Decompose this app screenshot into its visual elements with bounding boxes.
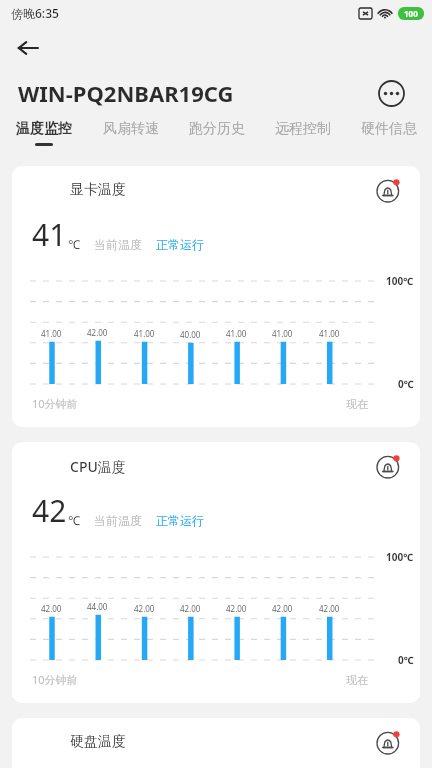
staticText: 100 [404, 8, 418, 19]
staticText: 41.00 [319, 328, 340, 339]
staticText: 当前温度 [94, 237, 142, 252]
staticText: 温度监控 [16, 120, 72, 138]
staticText: 42.00 [87, 327, 108, 338]
staticText: 42.00 [226, 603, 247, 614]
button[interactable]: Alarm settings [373, 174, 405, 206]
staticText: WIN-PQ2NBAR19CG [18, 78, 234, 108]
staticText: 10分钟前 [32, 396, 78, 411]
staticText: 风扇转速 [103, 120, 159, 138]
button[interactable]: Alarm settings [373, 450, 405, 482]
staticText: 41.00 [226, 328, 247, 339]
staticText: 显卡温度 [70, 181, 126, 199]
staticText: CPU温度 [70, 457, 126, 476]
staticText: 10分钟前 [32, 672, 78, 687]
button[interactable]: CPU温度 [12, 442, 420, 703]
staticText: 41.00 [134, 328, 155, 339]
staticText: 跑分历史 [189, 120, 245, 138]
staticText: 41.00 [41, 328, 62, 339]
button[interactable]: 远程控制 [260, 116, 346, 158]
button[interactable]: 温度监控 [0, 116, 87, 158]
staticText: 44.00 [87, 601, 108, 612]
button[interactable]: 跑分历史 [174, 116, 260, 158]
staticText: 正常运行 [156, 237, 204, 252]
staticText: 42.00 [41, 603, 62, 614]
staticText: 100℃ [386, 550, 414, 564]
staticText: 现在 [346, 397, 368, 411]
staticText: 现在 [346, 673, 368, 687]
button[interactable]: Back [8, 28, 48, 68]
staticText: 42.00 [272, 603, 293, 614]
staticText: 42.00 [134, 603, 155, 614]
staticText: 42 [32, 490, 67, 531]
staticText: ℃ [68, 236, 80, 252]
staticText: 远程控制 [275, 120, 331, 138]
staticText: 42.00 [180, 603, 201, 614]
staticText: 100℃ [386, 274, 414, 288]
staticText: 硬件信息 [361, 120, 417, 138]
button[interactable]: 显卡温度 [12, 166, 420, 427]
staticText: ℃ [68, 512, 80, 528]
staticText: 41.00 [272, 328, 293, 339]
staticText: 傍晚6:35 [11, 5, 59, 21]
staticText: 正常运行 [156, 513, 204, 528]
staticText: 0℃ [398, 653, 414, 667]
staticText: 42.00 [319, 603, 340, 614]
staticText: 硬盘温度 [70, 733, 126, 751]
button[interactable]: More options [376, 78, 406, 108]
staticText: 0℃ [398, 377, 414, 391]
button[interactable]: 风扇转速 [87, 116, 174, 158]
button[interactable]: 硬盘温度 [12, 718, 420, 768]
button[interactable]: 硬件信息 [346, 116, 432, 158]
staticText: 当前温度 [94, 513, 142, 528]
button[interactable]: Alarm settings [373, 726, 405, 758]
staticText: 40.00 [180, 329, 201, 340]
staticText: 41 [32, 214, 67, 255]
